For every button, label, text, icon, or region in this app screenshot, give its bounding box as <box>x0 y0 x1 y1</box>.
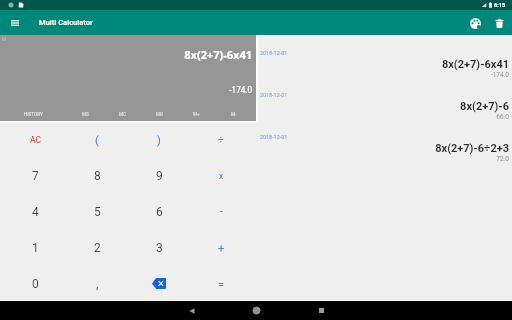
staticText: 8x(2+7)-6 <box>460 100 509 113</box>
staticText: AC <box>30 135 42 145</box>
staticText: 1 <box>32 241 39 255</box>
button[interactable]: 7 <box>5 157 66 193</box>
button[interactable]: = <box>190 265 252 301</box>
staticText: , <box>96 277 99 291</box>
button[interactable]: 2018-12-01 <box>256 50 512 92</box>
staticText: 2018-12-01 <box>260 50 288 56</box>
button[interactable]: 9 <box>128 157 190 193</box>
staticText: -174.0 <box>0 84 252 95</box>
staticText: 8x(2+7)-6÷2+3 <box>435 142 509 155</box>
staticText: - <box>220 206 223 218</box>
staticText: ÷ <box>218 134 224 146</box>
button[interactable]: Menu <box>5 13 25 33</box>
staticText: 2 <box>94 241 101 255</box>
button[interactable]: M+ <box>178 107 215 121</box>
staticText: M+ <box>193 112 200 117</box>
staticText: MC <box>119 112 127 117</box>
button[interactable]: M- <box>215 107 252 121</box>
button[interactable]: AC <box>5 121 66 157</box>
button[interactable]: MR <box>141 107 178 121</box>
button[interactable]: Backspace <box>128 265 190 301</box>
staticText: 7 <box>32 169 39 183</box>
staticText: 8 <box>94 169 101 183</box>
button[interactable]: ) <box>128 121 190 157</box>
staticText: 0 <box>32 277 39 291</box>
staticText: x <box>219 171 224 181</box>
button[interactable]: 2018-12-01 <box>256 134 512 176</box>
button[interactable]: ( <box>66 121 128 157</box>
button[interactable]: MS <box>67 107 104 121</box>
button[interactable]: Recents <box>305 301 338 320</box>
staticText: + <box>218 242 225 255</box>
button[interactable]: - <box>190 193 252 229</box>
staticText: HISTORY <box>24 112 43 117</box>
staticText: 9 <box>156 169 163 183</box>
button[interactable]: 8 <box>66 157 128 193</box>
button[interactable]: Change theme <box>465 13 485 33</box>
staticText: 72.0 <box>496 155 509 163</box>
button[interactable]: ÷ <box>190 121 252 157</box>
button[interactable]: 6 <box>128 193 190 229</box>
staticText: M <box>2 36 7 42</box>
staticText: 6 <box>156 205 163 219</box>
button[interactable]: Home <box>240 301 273 320</box>
staticText: 8x(2+7)-6x41 <box>0 47 252 62</box>
button[interactable]: 5 <box>66 193 128 229</box>
staticText: MS <box>82 112 89 117</box>
other: Backspace <box>152 278 166 289</box>
button[interactable]: , <box>66 265 128 301</box>
staticText: ) <box>157 134 161 147</box>
button[interactable]: 0 <box>5 265 66 301</box>
staticText: 3 <box>156 241 163 255</box>
staticText: -174.0 <box>490 71 509 79</box>
staticText: 8x(2+7)-6x41 <box>441 58 509 71</box>
button[interactable]: 4 <box>5 193 66 229</box>
button[interactable]: Back <box>175 301 208 320</box>
staticText: M- <box>231 112 237 117</box>
button[interactable]: 2 <box>66 229 128 265</box>
button[interactable]: x <box>190 157 252 193</box>
button[interactable]: MC <box>104 107 141 121</box>
button[interactable]: 2018-12-01 <box>256 92 512 134</box>
staticText: 2018-12-01 <box>260 134 288 140</box>
staticText: 6:15 <box>494 2 506 9</box>
staticText: 4 <box>32 205 39 219</box>
button[interactable]: 3 <box>128 229 190 265</box>
button[interactable]: + <box>190 229 252 265</box>
button[interactable]: Clear history <box>489 13 509 33</box>
staticText: ( <box>95 134 99 147</box>
staticText: 2018-12-01 <box>260 92 288 98</box>
button[interactable]: HISTORY <box>0 107 67 121</box>
staticText: = <box>218 278 225 291</box>
button[interactable]: 1 <box>5 229 66 265</box>
staticText: MR <box>156 112 163 117</box>
staticText: 5 <box>94 205 101 219</box>
staticText: 66.0 <box>496 113 509 121</box>
staticText: Multi Calculator <box>39 18 93 27</box>
